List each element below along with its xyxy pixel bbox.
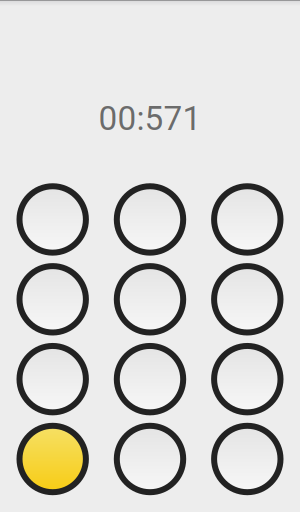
button[interactable]: Pad 4 xyxy=(16,263,89,335)
button[interactable]: Pad 6 xyxy=(211,263,283,335)
button[interactable]: Pad 10, lit xyxy=(16,423,89,495)
button[interactable]: Pad 2 xyxy=(114,183,186,256)
button[interactable]: Pad 5 xyxy=(114,263,186,335)
button[interactable]: Pad 3 xyxy=(211,183,283,256)
button[interactable]: Pad 8 xyxy=(114,343,186,415)
button[interactable]: Pad 9 xyxy=(211,343,283,415)
button[interactable]: Pad 12 xyxy=(211,423,283,495)
button[interactable]: Pad 11 xyxy=(114,423,186,495)
staticText: 00:571 xyxy=(98,99,201,138)
button[interactable]: Pad 1 xyxy=(16,183,89,256)
button[interactable]: Pad 7 xyxy=(16,343,89,415)
